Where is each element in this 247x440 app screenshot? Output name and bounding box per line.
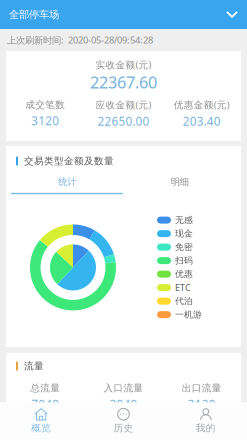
button[interactable]: 我的 xyxy=(165,404,247,437)
staticText: 交易类型金额及数量 xyxy=(24,155,114,167)
button[interactable]: 统计 xyxy=(11,176,123,194)
staticText: 无感 xyxy=(175,215,193,226)
staticText: 我的 xyxy=(196,422,216,434)
staticText: 扫码 xyxy=(175,255,193,266)
staticText: 入口流量 xyxy=(103,382,143,394)
staticText: 3120 xyxy=(188,396,216,412)
staticText: 一机游 xyxy=(175,309,202,320)
staticText: 全部停车场 xyxy=(9,8,59,21)
button[interactable]: 概览 xyxy=(0,404,82,437)
staticText: 免密 xyxy=(175,242,193,253)
staticText: 代泊 xyxy=(175,296,193,307)
staticText: 上次刷新时间: 2020-05-28/09:54:28 xyxy=(7,34,153,46)
button[interactable]: 明细 xyxy=(123,176,236,194)
staticText: 流量 xyxy=(24,360,44,372)
staticText: 出口流量 xyxy=(182,382,222,394)
staticText: 22367.60 xyxy=(90,71,157,93)
button[interactable]: Choose parking lot xyxy=(226,10,238,18)
staticText: 3120 xyxy=(31,113,59,129)
staticText: 优惠 xyxy=(175,269,193,280)
staticText: 203.40 xyxy=(183,113,221,129)
staticText: 总流量 xyxy=(30,382,60,394)
staticText: 22650.00 xyxy=(97,113,149,129)
staticText: ETC xyxy=(175,282,191,294)
staticText: 历史 xyxy=(113,422,133,434)
staticText: 成交笔数 xyxy=(25,99,65,111)
button[interactable]: 历史 xyxy=(82,404,165,437)
staticText: 3949 xyxy=(109,396,137,412)
staticText: 7049 xyxy=(31,396,59,412)
staticText: 应收金额(元) xyxy=(95,98,151,111)
staticText: 概览 xyxy=(31,422,51,434)
staticText: 统计 xyxy=(58,176,76,188)
staticText: 明细 xyxy=(171,176,189,188)
staticText: 优惠金额(元) xyxy=(174,98,230,111)
staticText: 实收金额(元) xyxy=(95,58,151,71)
staticText: 现金 xyxy=(175,228,193,239)
